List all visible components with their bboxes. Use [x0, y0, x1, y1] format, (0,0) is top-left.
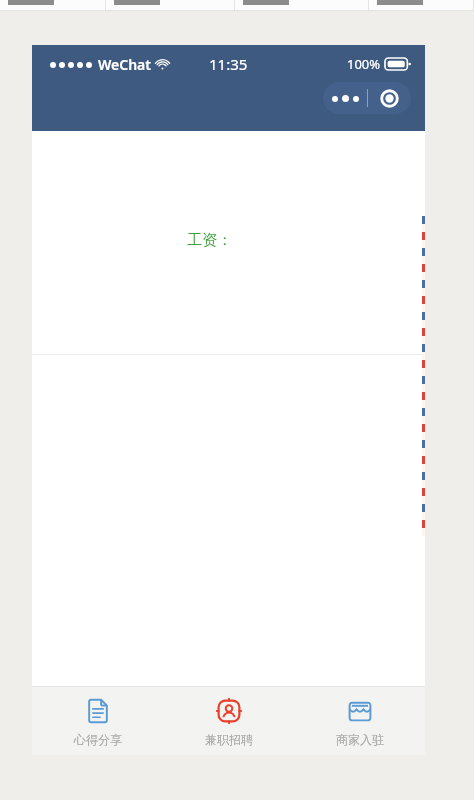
staticText: WeChat	[98, 55, 151, 74]
button[interactable]: 商家入驻	[294, 687, 425, 755]
button[interactable]: 心得分享	[32, 687, 163, 755]
staticText: 商家入驻	[336, 732, 384, 747]
staticText: 工资：	[187, 231, 232, 250]
staticText: 11:35	[209, 54, 248, 74]
staticText: 兼职招聘	[205, 732, 253, 747]
button[interactable]	[106, 0, 235, 10]
staticText: 100%	[347, 55, 381, 73]
button[interactable]: Menu and close	[323, 82, 411, 114]
staticText: 心得分享	[74, 732, 122, 747]
button[interactable]	[0, 0, 106, 10]
button[interactable]: 兼职招聘	[163, 687, 294, 755]
button[interactable]	[369, 0, 474, 10]
button[interactable]	[235, 0, 369, 10]
